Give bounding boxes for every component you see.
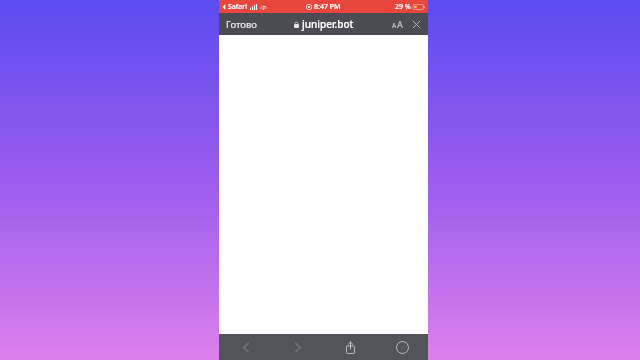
button[interactable]: Share	[324, 334, 376, 360]
button[interactable]: Готово	[219, 13, 264, 35]
staticText: juniper.bot	[302, 17, 354, 31]
staticText: 29 %	[395, 2, 411, 12]
staticText: A	[392, 21, 397, 30]
button[interactable]: Back	[219, 334, 272, 360]
staticText: Готово	[226, 18, 257, 31]
staticText: Safari	[228, 2, 248, 12]
button[interactable]: Close	[407, 13, 426, 35]
staticText: 8:47 PM	[314, 2, 341, 12]
button[interactable]: Open in Safari	[376, 334, 428, 360]
button[interactable]: Text size	[388, 13, 407, 35]
staticText: A	[397, 18, 403, 30]
button[interactable]: Forward	[272, 334, 324, 360]
